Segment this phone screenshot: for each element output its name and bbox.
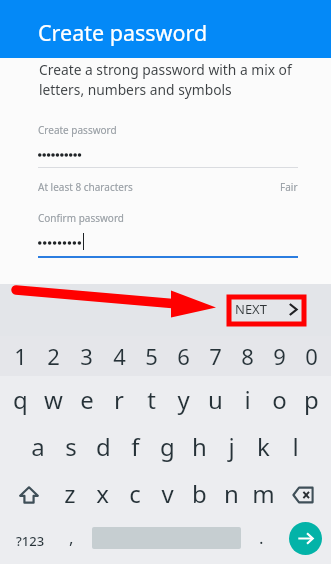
button[interactable]: m: [247, 470, 279, 517]
button[interactable]: w: [37, 376, 70, 423]
button[interactable]: f: [119, 423, 151, 470]
staticText: At least 8 characters: [38, 180, 133, 194]
button[interactable]: 2: [37, 336, 70, 376]
button[interactable]: u: [199, 376, 231, 423]
button[interactable]: t: [135, 376, 167, 423]
button[interactable]: 7: [199, 336, 231, 376]
button[interactable]: c: [119, 470, 151, 517]
staticText: ?123: [16, 532, 45, 550]
button[interactable]: h: [183, 423, 215, 470]
button[interactable]: 1: [4, 336, 37, 376]
staticText: m: [252, 477, 275, 510]
button[interactable]: Backspace: [279, 470, 327, 517]
staticText: w: [44, 383, 63, 416]
staticText: a: [31, 430, 45, 463]
button[interactable]: 5: [135, 336, 167, 376]
staticText: x: [96, 477, 109, 510]
staticText: p: [304, 383, 319, 416]
staticText: s: [65, 430, 77, 463]
button[interactable]: 9: [263, 336, 295, 376]
button[interactable]: s: [54, 423, 87, 470]
staticText: c: [129, 477, 141, 510]
button[interactable]: g: [151, 423, 183, 470]
staticText: y: [177, 383, 190, 416]
staticText: v: [161, 477, 174, 510]
button[interactable]: NEXT: [228, 294, 306, 324]
button[interactable]: e: [70, 376, 103, 423]
staticText: 4: [113, 341, 126, 371]
staticText: ,: [69, 526, 74, 549]
staticText: Create a strong password with a mix of l…: [39, 60, 292, 99]
staticText: e: [80, 383, 94, 416]
button[interactable]: x: [86, 470, 119, 517]
button[interactable]: 6: [167, 336, 199, 376]
button[interactable]: z: [53, 470, 86, 517]
button[interactable]: ?123: [8, 517, 52, 564]
staticText: Create password: [38, 18, 208, 47]
button[interactable]: y: [167, 376, 199, 423]
staticText: 1: [14, 341, 27, 371]
button[interactable]: 4: [103, 336, 135, 376]
button[interactable]: n: [215, 470, 247, 517]
staticText: f: [131, 430, 140, 463]
staticText: 6: [177, 341, 190, 371]
staticText: r: [114, 383, 124, 416]
button[interactable]: Enter: [289, 522, 322, 555]
staticText: 3: [80, 341, 93, 371]
button[interactable]: p: [295, 376, 327, 423]
staticText: 8: [241, 341, 254, 371]
staticText: k: [257, 430, 270, 463]
staticText: 2: [47, 341, 60, 371]
staticText: n: [224, 477, 239, 510]
button[interactable]: Shift: [4, 470, 53, 517]
button[interactable]: d: [87, 423, 119, 470]
button[interactable]: a: [21, 423, 54, 470]
staticText: 9: [273, 341, 286, 371]
button[interactable]: i: [231, 376, 263, 423]
button[interactable]: b: [183, 470, 215, 517]
button[interactable]: r: [103, 376, 135, 423]
button[interactable]: ,: [56, 517, 86, 564]
staticText: .: [259, 526, 264, 549]
button[interactable]: 0: [295, 336, 327, 376]
staticText: t: [147, 383, 156, 416]
staticText: 5: [145, 341, 158, 371]
staticText: u: [208, 383, 223, 416]
staticText: 7: [209, 341, 222, 371]
button[interactable]: q: [4, 376, 37, 423]
staticText: o: [272, 383, 287, 416]
button[interactable]: v: [151, 470, 183, 517]
staticText: Create password: [38, 123, 117, 137]
button[interactable]: 8: [231, 336, 263, 376]
staticText: z: [64, 477, 76, 510]
staticText: g: [160, 430, 175, 463]
staticText: i: [244, 383, 251, 416]
staticText: q: [13, 383, 28, 416]
staticText: NEXT: [235, 300, 267, 318]
button[interactable]: j: [215, 423, 247, 470]
button[interactable]: 3: [70, 336, 103, 376]
staticText: b: [192, 477, 207, 510]
staticText: l: [292, 430, 299, 463]
staticText: Fair: [280, 180, 298, 194]
button[interactable]: k: [247, 423, 279, 470]
staticText: j: [228, 430, 235, 463]
button[interactable]: l: [279, 423, 311, 470]
button[interactable]: .: [247, 517, 275, 564]
staticText: d: [96, 430, 111, 463]
staticText: 0: [305, 341, 318, 371]
staticText: Confirm password: [38, 211, 124, 225]
button[interactable]: o: [263, 376, 295, 423]
staticText: h: [192, 430, 207, 463]
